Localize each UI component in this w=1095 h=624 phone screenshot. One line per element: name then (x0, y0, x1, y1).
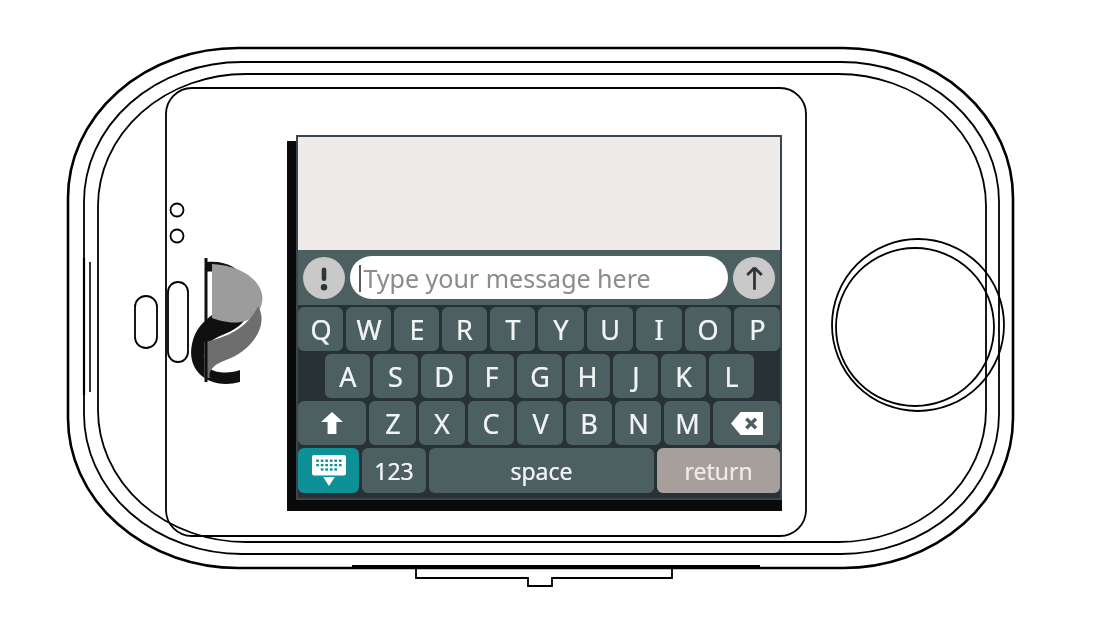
staticText: return (684, 455, 753, 486)
staticText: W (356, 311, 382, 348)
button[interactable]: T (490, 307, 535, 351)
button[interactable]: Alert (303, 257, 345, 299)
staticText: V (532, 405, 549, 442)
button[interactable]: L (709, 354, 754, 398)
button[interactable]: O (685, 307, 731, 351)
button[interactable]: H (565, 354, 610, 398)
staticText: G (530, 358, 550, 395)
button[interactable]: space (429, 448, 654, 493)
staticText: F (484, 358, 499, 395)
staticText: X (434, 405, 450, 442)
button[interactable]: D (421, 354, 466, 398)
button[interactable]: return (657, 448, 780, 493)
staticText: Y (553, 311, 569, 348)
button[interactable]: K (661, 354, 706, 398)
button[interactable]: C (468, 401, 514, 445)
staticText: Type your message here (363, 261, 651, 295)
button[interactable]: S (373, 354, 418, 398)
button[interactable]: Z (369, 401, 416, 445)
staticText: T (505, 311, 521, 348)
button[interactable]: Y (538, 307, 584, 351)
staticText: I (654, 311, 664, 348)
button[interactable]: W (346, 307, 391, 351)
button[interactable]: V (517, 401, 563, 445)
button[interactable]: U (587, 307, 633, 351)
button[interactable]: N (615, 401, 661, 445)
button[interactable]: G (517, 354, 562, 398)
button[interactable]: M (664, 401, 710, 445)
staticText: D (434, 358, 454, 395)
staticText: P (749, 311, 766, 348)
staticText: 123 (374, 455, 414, 486)
staticText: space (510, 455, 573, 486)
staticText: J (632, 358, 640, 395)
staticText: R (456, 311, 473, 348)
staticText: S (388, 358, 403, 395)
staticText: B (580, 405, 598, 442)
staticText: K (675, 358, 692, 395)
button[interactable]: R (442, 307, 487, 351)
staticText: L (724, 358, 739, 395)
button[interactable]: 123 (362, 448, 426, 493)
button[interactable]: Hide keyboard (298, 448, 359, 493)
staticText: N (628, 405, 649, 442)
staticText: A (339, 358, 357, 395)
button[interactable]: X (419, 401, 465, 445)
button[interactable]: Q (298, 307, 343, 351)
button[interactable]: F (469, 354, 514, 398)
staticText: U (600, 311, 620, 348)
button[interactable]: J (613, 354, 658, 398)
staticText: Q (310, 311, 332, 348)
button[interactable]: A (325, 354, 370, 398)
staticText: Z (385, 405, 401, 442)
button[interactable]: Shift (298, 401, 366, 445)
staticText: M (675, 405, 700, 442)
button[interactable]: Type your message here (350, 256, 728, 299)
button[interactable]: B (566, 401, 612, 445)
button[interactable]: P (734, 307, 780, 351)
button[interactable]: Send (733, 257, 775, 299)
staticText: H (577, 358, 598, 395)
button[interactable]: E (394, 307, 439, 351)
button[interactable]: I (636, 307, 682, 351)
button[interactable]: Backspace (713, 401, 780, 445)
staticText: C (482, 405, 500, 442)
staticText: O (697, 311, 719, 348)
staticText: E (409, 311, 425, 348)
